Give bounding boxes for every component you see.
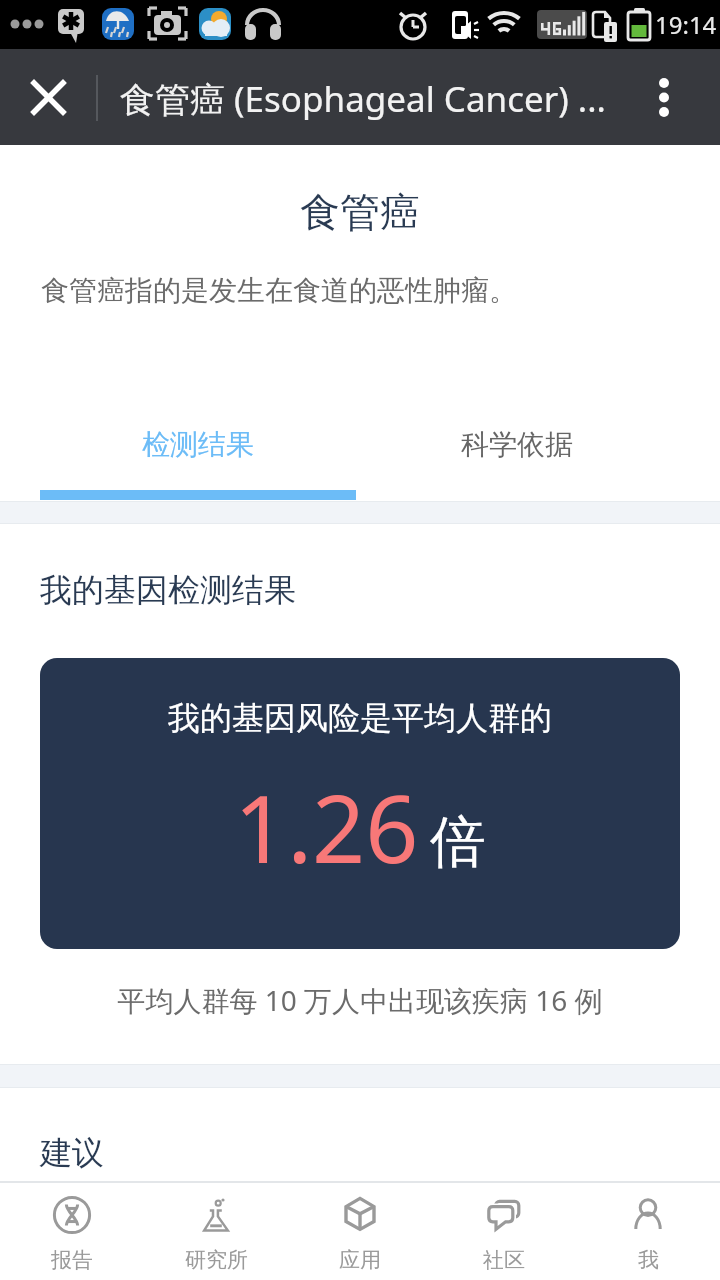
staticText: 检测结果	[142, 427, 254, 462]
staticText: 食管癌 (Esophageal Cancer) ...	[120, 75, 606, 123]
button[interactable]: Close	[16, 49, 80, 145]
staticText: 我的基因风险是平均人群的	[40, 698, 680, 738]
button[interactable]: 应用	[288, 1183, 432, 1280]
button[interactable]: 研究所	[144, 1183, 288, 1280]
staticText: 1.26	[234, 764, 419, 891]
staticText: 食管癌	[0, 187, 720, 237]
button[interactable]: 检测结果	[40, 401, 356, 485]
staticText: 研究所	[185, 1247, 248, 1273]
button[interactable]: 社区	[432, 1183, 576, 1280]
staticText: 建议	[40, 1133, 104, 1173]
staticText: 19:14	[655, 8, 717, 41]
staticText: 我的基因检测结果	[40, 570, 296, 610]
button[interactable]: 我	[576, 1183, 720, 1280]
staticText: 平均人群每 10 万人中出现该疾病 16 例	[0, 981, 720, 1019]
staticText: 报告	[51, 1247, 93, 1273]
button[interactable]: More options	[632, 49, 696, 145]
staticText: 倍	[430, 807, 486, 878]
staticText: 科学依据	[461, 427, 573, 462]
button[interactable]: 报告	[0, 1183, 144, 1280]
staticText: 社区	[483, 1247, 525, 1273]
button[interactable]: 科学依据	[359, 401, 675, 485]
staticText: 食管癌指的是发生在食道的恶性肿瘤。	[41, 273, 517, 308]
staticText: 我	[638, 1247, 659, 1273]
staticText: 应用	[339, 1247, 381, 1273]
